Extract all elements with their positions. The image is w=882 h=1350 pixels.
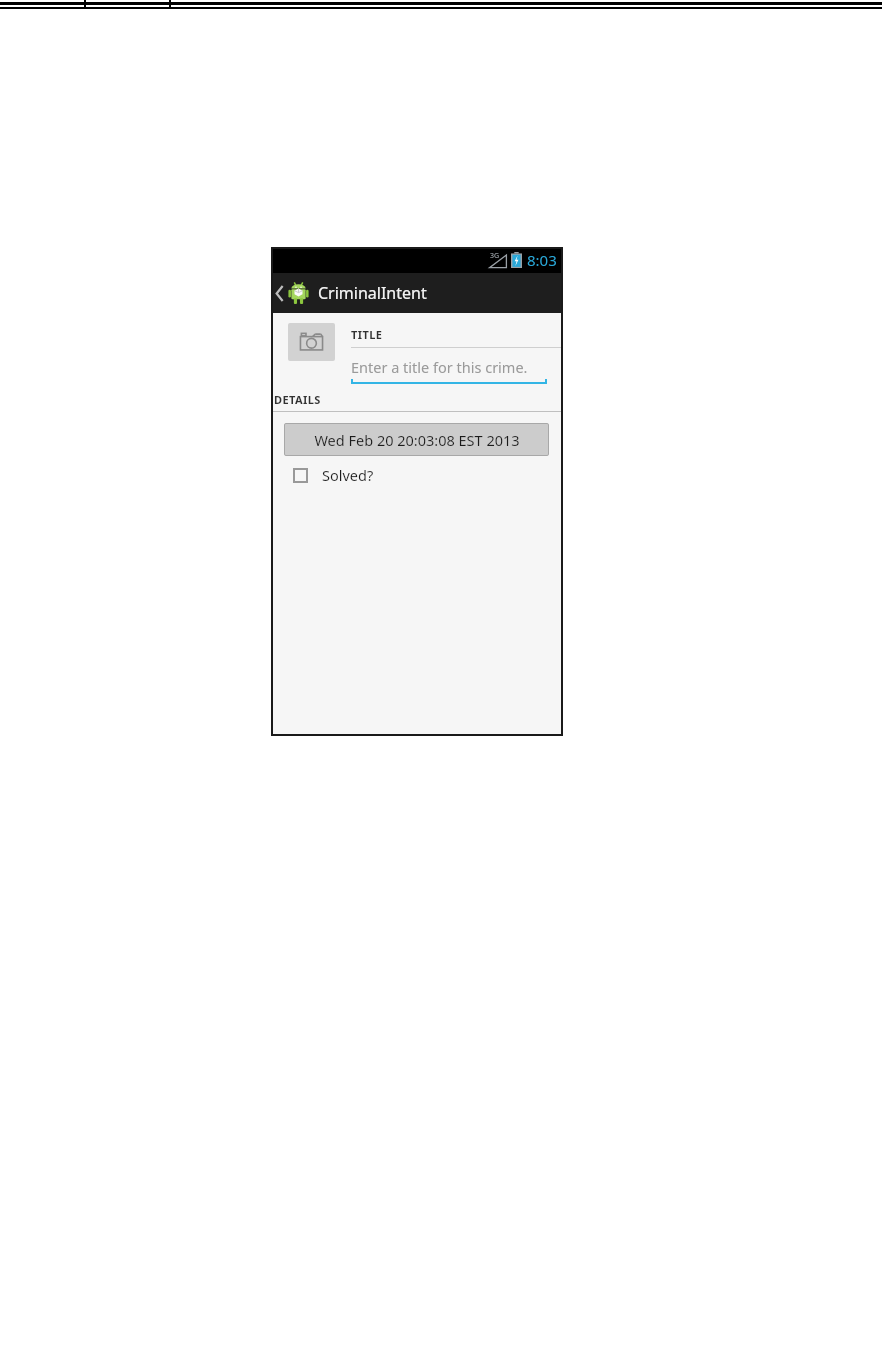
staticText: Enter a title for this crime. xyxy=(351,357,528,377)
staticText: 8:03 xyxy=(527,250,557,270)
staticText: TITLE xyxy=(351,327,383,342)
button[interactable]: Enter a title for this crime. xyxy=(351,357,547,384)
button[interactable]: Take a photo xyxy=(288,323,335,361)
button[interactable]: Wed Feb 20 20:03:08 EST 2013 xyxy=(284,423,549,456)
staticText: CriminalIntent xyxy=(318,282,427,304)
button[interactable]: Solved? xyxy=(293,465,374,485)
staticText: Solved? xyxy=(322,465,374,485)
button[interactable]: Navigate up xyxy=(271,281,311,305)
staticText: 3G xyxy=(490,251,500,261)
staticText: DETAILS xyxy=(274,392,321,407)
staticText: Wed Feb 20 20:03:08 EST 2013 xyxy=(314,430,520,450)
